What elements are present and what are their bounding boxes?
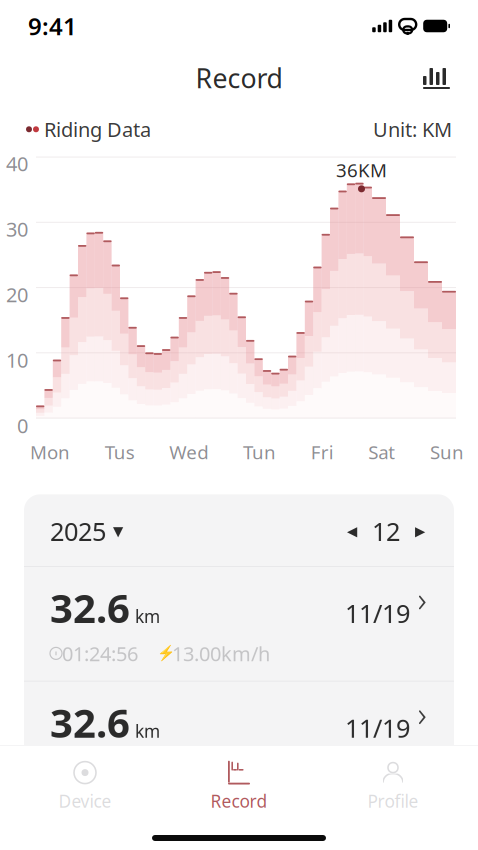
button[interactable]: 32.6 bbox=[24, 682, 454, 795]
button[interactable]: Statistics bbox=[417, 61, 456, 95]
button[interactable]: Next month bbox=[412, 521, 428, 542]
staticText: 13.00km/h bbox=[172, 640, 270, 667]
staticText: 01:24:56 bbox=[62, 755, 138, 781]
staticText: Record bbox=[195, 60, 282, 96]
staticText: ⚡ bbox=[157, 645, 175, 662]
staticText: › bbox=[417, 690, 426, 736]
staticText: 11/19 bbox=[345, 596, 410, 630]
button[interactable]: Profile bbox=[316, 752, 470, 817]
staticText: 13.00km/h bbox=[172, 755, 270, 781]
staticText: 11/19 bbox=[345, 711, 410, 745]
button[interactable]: 2025 bbox=[50, 510, 123, 552]
staticText: 30 bbox=[6, 216, 28, 242]
button[interactable]: Record bbox=[162, 752, 316, 817]
staticText: Device bbox=[58, 790, 111, 813]
staticText: ▶ bbox=[415, 524, 425, 539]
button[interactable]: 32.6 bbox=[24, 567, 454, 681]
staticText: 12 bbox=[372, 514, 400, 548]
staticText: 20 bbox=[6, 281, 28, 308]
staticText: Wed bbox=[169, 440, 208, 464]
staticText: 10 bbox=[6, 347, 28, 373]
staticText: Unit: KM bbox=[373, 116, 452, 143]
staticText: ◀ bbox=[347, 524, 357, 539]
staticText: Sat bbox=[368, 440, 395, 464]
staticText: Mon bbox=[30, 440, 70, 464]
staticText: 32.6 bbox=[50, 696, 130, 749]
staticText: 9:41 bbox=[28, 10, 77, 42]
staticText: 36KM bbox=[336, 158, 387, 182]
staticText: ▼ bbox=[113, 524, 123, 539]
staticText: Fri bbox=[311, 440, 334, 464]
staticText: Record bbox=[210, 790, 267, 813]
staticText: 01:24:56 bbox=[62, 640, 138, 667]
staticText: Sun bbox=[430, 440, 464, 464]
staticText: Tun bbox=[243, 440, 276, 464]
staticText: Riding Data bbox=[39, 116, 151, 143]
staticText: Tus bbox=[105, 440, 135, 464]
staticText: Profile bbox=[367, 790, 418, 813]
staticText: › bbox=[417, 576, 426, 622]
staticText: 40 bbox=[6, 150, 28, 177]
staticText: 0 bbox=[17, 412, 28, 439]
staticText: 32.6 bbox=[50, 581, 130, 634]
button[interactable]: Device bbox=[8, 752, 162, 817]
staticText: km bbox=[130, 719, 160, 742]
staticText: km bbox=[130, 605, 160, 628]
staticText: 2025 bbox=[50, 514, 106, 548]
button[interactable]: Previous month bbox=[344, 521, 360, 542]
